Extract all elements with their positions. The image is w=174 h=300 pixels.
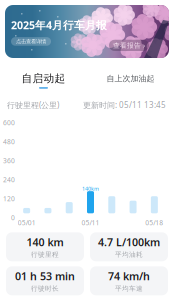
staticText: 更新时间: 05/11 13:45 — [83, 100, 166, 110]
staticText: 4.7 L/100km — [98, 235, 160, 249]
staticText: 360 — [3, 156, 15, 165]
staticText: 自启动起 — [21, 72, 65, 85]
button[interactable]: 140 km — [6, 232, 84, 261]
staticText: 平均车速 — [115, 284, 143, 292]
staticText: 05/18 — [145, 218, 163, 227]
button[interactable]: 4.7 L/100km — [90, 232, 168, 261]
staticText: 平均油耗 — [115, 250, 143, 258]
staticText: 点击查看详情 — [16, 38, 46, 45]
staticText: 480 — [3, 137, 15, 146]
button[interactable]: 74 km/h — [90, 266, 168, 295]
staticText: 600 — [3, 118, 15, 127]
staticText: 2025年4月行车月报 — [11, 18, 107, 32]
staticText: 05/01 — [18, 218, 36, 227]
staticText: 140km — [82, 185, 99, 192]
staticText: 行驶里程 — [31, 250, 59, 258]
staticText: 74 km/h — [108, 269, 150, 283]
button[interactable]: 自上次加油起 — [87, 74, 174, 87]
staticText: 140 km — [26, 235, 63, 249]
staticText: 0 — [11, 213, 15, 222]
staticText: 自上次加油起 — [106, 74, 154, 83]
staticText: 行驶时长 — [31, 284, 59, 292]
staticText: 查看报告 › — [113, 41, 145, 50]
staticText: 240 — [3, 175, 15, 184]
staticText: 01 h 53 min — [15, 269, 75, 283]
staticText: 行驶里程(公里) — [7, 100, 59, 110]
staticText: 120 — [3, 194, 15, 203]
staticText: 05/11 — [81, 218, 99, 227]
button[interactable]: 01 h 53 min — [6, 266, 84, 295]
button[interactable]: 自启动起 — [0, 72, 87, 89]
button[interactable]: 2025年4月行车月报 — [5, 5, 169, 58]
